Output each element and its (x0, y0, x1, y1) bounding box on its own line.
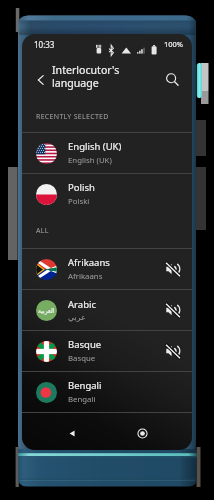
button[interactable]: Basque (22, 331, 192, 371)
button[interactable]: Home (131, 422, 153, 444)
button[interactable]: English (UK) (22, 133, 192, 173)
staticText: English (UK) (68, 140, 122, 153)
staticText: ALL (36, 226, 49, 236)
button[interactable]: Mute language (162, 299, 184, 321)
staticText: Polski (68, 196, 90, 207)
button[interactable]: Afrikaans (22, 249, 192, 289)
button[interactable]: Back (30, 69, 52, 91)
staticText: 10:33 (34, 39, 55, 50)
staticText: Bengali (68, 394, 96, 405)
staticText: العربية (38, 307, 55, 314)
staticText: 100% (164, 39, 184, 49)
staticText: English (UK) (68, 155, 112, 166)
staticText: Basque (68, 353, 96, 364)
button[interactable]: Bengali (22, 372, 192, 412)
staticText: Interlocutor's language (52, 63, 120, 90)
staticText: عربي (68, 313, 86, 322)
staticText: Polish (68, 181, 95, 194)
staticText: Afrikaans (68, 271, 103, 282)
staticText: Arabic (68, 298, 96, 311)
staticText: Basque (68, 338, 102, 351)
staticText: Afrikaans (68, 256, 110, 269)
staticText: RECENTLY SELECTED (36, 112, 109, 122)
button[interactable]: Mute language (162, 258, 184, 280)
button[interactable]: Polish (22, 174, 192, 214)
staticText: Bengali (68, 379, 102, 392)
button[interactable]: Back (61, 422, 83, 444)
button[interactable]: Search (161, 69, 183, 91)
button[interactable]: Mute language (162, 340, 184, 362)
button[interactable]: العربية (22, 290, 192, 330)
